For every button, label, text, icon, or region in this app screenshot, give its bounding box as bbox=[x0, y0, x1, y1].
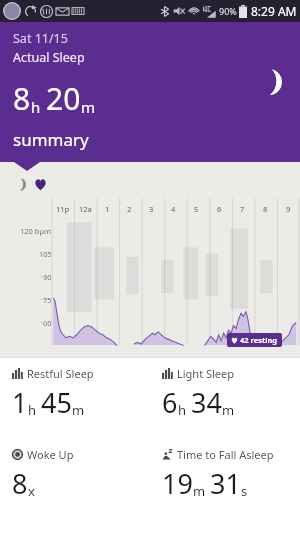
staticText: 8 bbox=[13, 78, 31, 119]
staticText: Light Sleep bbox=[177, 366, 235, 381]
staticText: summary bbox=[13, 128, 89, 151]
staticText: m bbox=[72, 401, 85, 419]
staticText: 90% bbox=[219, 5, 237, 17]
staticText: 60 bbox=[43, 318, 52, 328]
staticText: 8:29 AM bbox=[251, 3, 297, 19]
button[interactable]: Time to Fall Asleep bbox=[150, 439, 300, 506]
staticText: m bbox=[193, 482, 206, 500]
staticText: Sat 11/15 bbox=[13, 30, 68, 47]
staticText: 2 bbox=[127, 204, 132, 214]
staticText: 20 bbox=[46, 78, 81, 119]
staticText: 42 resting bbox=[240, 335, 278, 345]
staticText: 19 bbox=[162, 465, 193, 502]
staticText: Woke Up bbox=[27, 447, 74, 462]
staticText: 31 bbox=[210, 465, 241, 502]
staticText: 1 bbox=[105, 204, 110, 214]
staticText: 8 bbox=[12, 465, 28, 502]
button[interactable]: 42 resting bbox=[227, 333, 282, 347]
staticText: 11p bbox=[56, 204, 70, 214]
staticText: Actual Sleep bbox=[13, 49, 85, 66]
staticText: 75 bbox=[43, 295, 52, 305]
staticText: 6 bbox=[217, 204, 222, 214]
staticText: h bbox=[31, 97, 41, 117]
staticText: h bbox=[28, 401, 37, 419]
staticText: 105 bbox=[39, 249, 52, 259]
staticText: x bbox=[28, 482, 35, 500]
staticText: m bbox=[222, 401, 235, 419]
staticText: 6 bbox=[162, 384, 178, 421]
button[interactable]: Restful Sleep bbox=[0, 358, 150, 425]
other: Sleep bbox=[256, 69, 282, 95]
staticText: 34 bbox=[191, 384, 222, 421]
button[interactable]: Woke Up bbox=[0, 439, 150, 506]
staticText: 12a bbox=[79, 204, 92, 214]
other: Sleep graph bbox=[13, 178, 26, 191]
staticText: 7 bbox=[240, 204, 245, 214]
staticText: 90 bbox=[43, 272, 52, 282]
staticText: 120 bpm bbox=[20, 226, 52, 236]
staticText: 4 bbox=[171, 204, 176, 214]
button[interactable]: Sat 11/15 bbox=[0, 22, 300, 162]
staticText: 3 bbox=[149, 204, 154, 214]
staticText: m bbox=[81, 97, 96, 117]
staticText: 5 bbox=[194, 204, 199, 214]
staticText: h bbox=[178, 401, 187, 419]
staticText: 1 bbox=[12, 384, 28, 421]
staticText: Time to Fall Asleep bbox=[177, 447, 274, 462]
other: Heart rate graph bbox=[34, 178, 47, 191]
button[interactable]: Light Sleep bbox=[150, 358, 300, 425]
staticText: 9 bbox=[286, 204, 291, 214]
staticText: 45 bbox=[41, 384, 72, 421]
staticText: 8 bbox=[263, 204, 268, 214]
staticText: Restful Sleep bbox=[27, 366, 94, 381]
staticText: s bbox=[241, 482, 248, 500]
